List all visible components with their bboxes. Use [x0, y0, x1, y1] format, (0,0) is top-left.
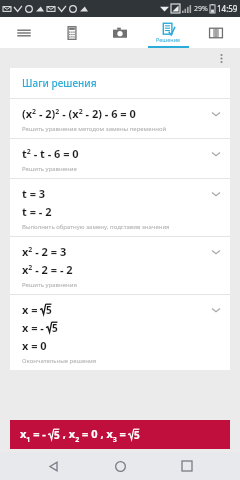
button[interactable]: More options: [212, 49, 230, 67]
button[interactable]: Back: [39, 452, 67, 480]
staticText: x =: [22, 302, 38, 317]
staticText: Шаги решения: [22, 76, 97, 90]
staticText: 5: [134, 428, 140, 442]
button[interactable]: Textbook: [192, 17, 240, 48]
button[interactable]: x =: [10, 295, 230, 370]
button[interactable]: Решение: [144, 17, 192, 48]
staticText: (x2 - 2)2 - (x2 - 2) - 6 = 0: [22, 106, 136, 121]
button[interactable]: Шаги решения: [10, 68, 230, 98]
button[interactable]: Camera: [96, 17, 144, 48]
staticText: , x2 = 0 , x3 =: [60, 426, 126, 444]
button[interactable]: Recents: [173, 452, 201, 480]
staticText: Решить уравнения: [22, 281, 77, 289]
button[interactable]: (x2 - 2)2 - (x2 - 2) - 6 = 0: [10, 99, 230, 138]
staticText: t = - 2: [22, 204, 52, 219]
staticText: x = 0: [22, 338, 47, 353]
staticText: 14:59: [217, 3, 238, 14]
staticText: t = 3: [22, 186, 46, 201]
staticText: Окончательные решения: [22, 357, 97, 365]
staticText: Выполнить обратную замену, подставив зна…: [22, 223, 170, 231]
staticText: Решить уравнение: [22, 165, 77, 173]
staticText: x2 - 2 = - 2: [22, 262, 73, 277]
staticText: 5: [46, 303, 52, 317]
staticText: 5: [52, 321, 58, 335]
button[interactable]: t = 3: [10, 179, 230, 236]
staticText: 29%: [194, 4, 208, 14]
staticText: 5: [54, 428, 60, 442]
button[interactable]: x2 - 2 = 3: [10, 237, 230, 294]
button[interactable]: Home: [106, 452, 134, 480]
staticText: x = -: [22, 320, 44, 335]
button[interactable]: x1 = -: [10, 420, 230, 449]
staticText: x2 - 2 = 3: [22, 244, 67, 259]
button[interactable]: Calculator: [48, 17, 96, 48]
staticText: x1 = -: [20, 426, 46, 444]
button[interactable]: t2 - t - 6 = 0: [10, 139, 230, 178]
staticText: Решить уравнение методом замены переменн…: [22, 125, 167, 133]
staticText: t2 - t - 6 = 0: [22, 146, 79, 161]
button[interactable]: Menu: [0, 17, 48, 48]
staticText: Решение: [156, 36, 181, 43]
